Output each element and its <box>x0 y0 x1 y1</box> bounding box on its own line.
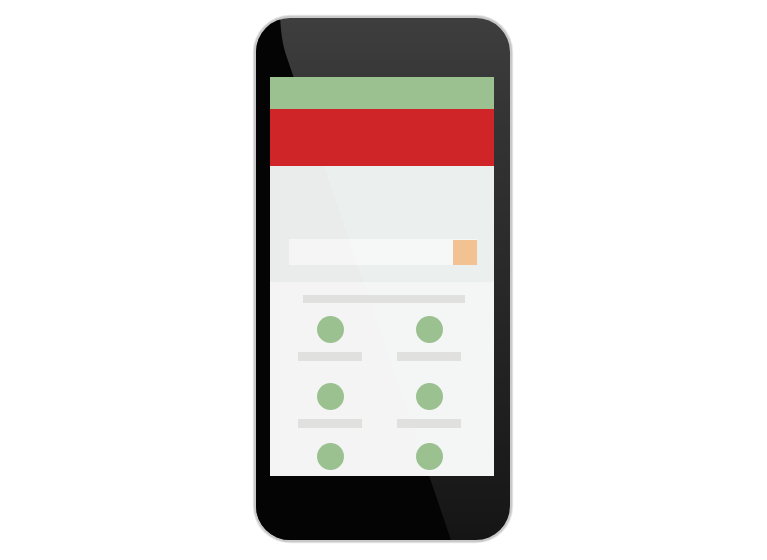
button[interactable]: Category 5 <box>284 429 376 475</box>
button[interactable]: Category 4 <box>383 369 475 430</box>
button[interactable]: Category 3 <box>284 369 376 430</box>
button[interactable]: Category 6 <box>383 429 475 475</box>
button[interactable]: Category 2 <box>383 302 475 363</box>
button[interactable]: Category 1 <box>284 302 376 363</box>
button[interactable]: Search <box>289 239 477 265</box>
